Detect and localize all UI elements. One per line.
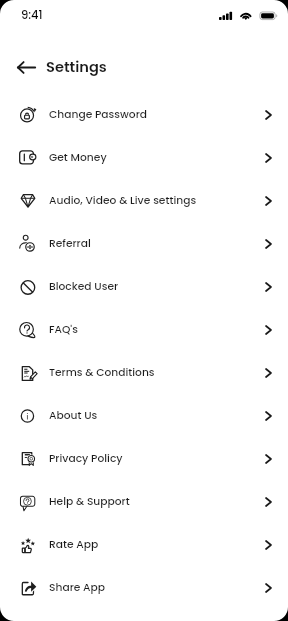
button[interactable]: Get Money: [0, 136, 288, 179]
staticText: Rate App: [49, 537, 99, 552]
button[interactable]: About Us: [0, 394, 288, 437]
button[interactable]: Share App: [0, 566, 288, 609]
button[interactable]: FAQ's: [0, 308, 288, 351]
staticText: FAQ's: [49, 322, 78, 337]
button[interactable]: Terms & Conditions: [0, 351, 288, 394]
staticText: Change Password: [49, 107, 148, 122]
staticText: Audio, Video & Live settings: [49, 193, 197, 208]
button[interactable]: Back: [13, 54, 39, 80]
staticText: Get Money: [49, 150, 107, 165]
staticText: Blocked User: [49, 279, 119, 294]
button[interactable]: Audio, Video & Live settings: [0, 179, 288, 222]
staticText: 9:41: [21, 7, 43, 23]
staticText: About Us: [49, 408, 98, 423]
staticText: Referral: [49, 236, 91, 251]
button[interactable]: Rate App: [0, 523, 288, 566]
staticText: Settings: [46, 57, 107, 77]
button[interactable]: Privacy Policy: [0, 437, 288, 480]
staticText: Share App: [49, 580, 106, 595]
staticText: Privacy Policy: [49, 451, 123, 466]
button[interactable]: Change Password: [0, 93, 288, 136]
staticText: Terms & Conditions: [49, 365, 155, 380]
button[interactable]: Blocked User: [0, 265, 288, 308]
button[interactable]: Help & Support: [0, 480, 288, 523]
staticText: Help & Support: [49, 494, 130, 509]
button[interactable]: Referral: [0, 222, 288, 265]
